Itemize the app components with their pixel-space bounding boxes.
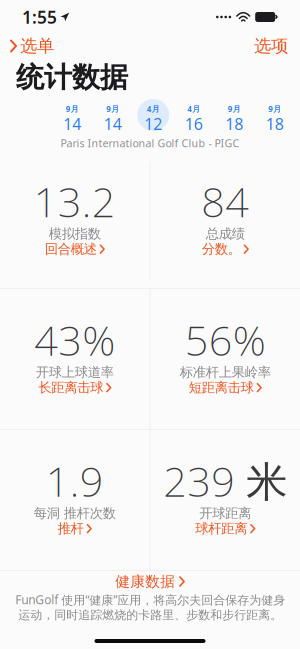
staticText: 开球上球道率 [36,364,114,380]
staticText: 模拟指数 [49,226,101,242]
staticText: 选单 [20,35,54,57]
staticText: 14 [63,113,81,134]
staticText: 12 [144,113,162,134]
button[interactable]: 4月 [133,97,173,133]
button[interactable]: 9月 [254,97,295,133]
staticText: 健康数据 [115,572,175,590]
staticText: 84 [201,174,249,229]
staticText: 推杆 [58,520,84,537]
staticText: FunGolf 使用“健康”应用，将高尔夫回合保存为健身运动，同时追踪燃烧的卡路… [15,592,285,622]
staticText: 4月 [147,104,160,114]
staticText: 总成绩 [206,226,245,242]
staticText: 短距离击球 [189,379,254,396]
staticText: 球杆距离 [195,520,247,537]
staticText: 每洞 推杆次数 [34,505,116,521]
button[interactable]: 4月 [173,97,214,133]
staticText: 统计数据 [16,60,128,95]
staticText: 239 米 [163,453,287,508]
staticText: 9月 [106,104,119,114]
staticText: 长距离击球 [38,379,103,396]
button[interactable]: 43% [0,312,149,406]
staticText: Paris International Golf Club - PIGC [60,136,239,150]
staticText: 14 [104,113,122,134]
button[interactable]: 选项 [244,32,298,60]
staticText: 9月 [66,104,79,114]
staticText: 4月 [187,104,200,114]
staticText: 开球距离 [199,505,251,521]
staticText: 13.2 [34,174,116,229]
staticText: 回合概述 [45,241,97,257]
staticText: 选项 [254,35,288,57]
staticText: 标准杆上果岭率 [180,364,271,380]
staticText: 18 [225,113,243,134]
button[interactable]: 选单 [2,32,62,60]
staticText: 1:55 [22,5,57,28]
button[interactable]: 健康数据 [115,571,185,592]
button[interactable]: 1.9 [0,453,149,547]
staticText: 18 [266,113,284,134]
button[interactable]: 56% [150,312,300,406]
staticText: 16 [185,113,203,134]
staticText: 分数。 [202,241,241,257]
staticText: 9月 [228,104,241,114]
staticText: 56% [185,312,266,367]
button[interactable]: 239 米 [150,453,300,547]
staticText: 1.9 [46,453,104,508]
staticText: 9月 [268,104,281,114]
button[interactable]: 9月 [92,97,133,133]
button[interactable]: 9月 [52,97,92,133]
button[interactable]: 13.2 [0,174,149,267]
button[interactable]: 9月 [214,97,254,133]
button[interactable]: 84 [150,174,300,267]
staticText: 43% [34,312,115,367]
